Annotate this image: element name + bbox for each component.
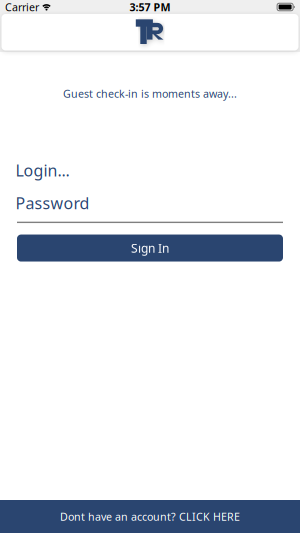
staticText: Carrier <box>5 0 39 14</box>
staticText: Login... <box>15 160 69 181</box>
staticText: 3:57 PM <box>129 0 170 14</box>
staticText: Password <box>15 192 89 214</box>
staticText: Dont have an account? CLICK HERE <box>60 509 240 524</box>
staticText: Guest check-in is moments away... <box>63 86 237 101</box>
staticText: Sign In <box>131 240 169 256</box>
button[interactable]: Password <box>0 192 300 223</box>
button[interactable]: Dont have an account? CLICK HERE <box>0 500 300 533</box>
button[interactable]: Sign In <box>17 235 283 262</box>
button[interactable]: Login... <box>0 160 300 181</box>
